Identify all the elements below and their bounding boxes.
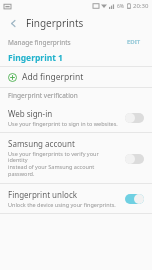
staticText: Manage fingerprints xyxy=(8,38,124,47)
button[interactable]: On xyxy=(125,193,144,204)
staticText: 6% xyxy=(117,3,125,10)
button[interactable]: Web sign-in xyxy=(0,103,152,132)
staticText: Fingerprint unlock xyxy=(8,189,77,200)
staticText: Fingerprint 1 xyxy=(8,52,63,64)
button[interactable]: EDIT xyxy=(124,36,144,48)
staticText: Samsung account xyxy=(8,138,75,149)
button[interactable]: Add fingerprint xyxy=(0,67,152,87)
button[interactable]: Fingerprint unlock xyxy=(0,184,152,213)
button[interactable]: Fingerprint 1 xyxy=(0,50,152,66)
button[interactable]: Samsung account xyxy=(0,133,152,183)
staticText: EDIT xyxy=(127,38,141,46)
staticText: Use your fingerprint to sign in to websi… xyxy=(8,120,118,127)
staticText: Web sign-in xyxy=(8,108,53,119)
button[interactable]: Back xyxy=(0,12,26,34)
staticText: Unlock the device using your fingerprint… xyxy=(8,201,116,208)
staticText: 20:30 xyxy=(133,2,149,10)
button[interactable]: Off xyxy=(125,112,144,123)
button[interactable]: Off xyxy=(125,153,144,164)
staticText: Add fingerprint xyxy=(22,71,84,83)
staticText: Fingerprints xyxy=(26,16,84,30)
staticText: Use your fingerprints to verify your ide… xyxy=(8,150,119,178)
staticText: Fingerprint verification xyxy=(8,91,78,100)
